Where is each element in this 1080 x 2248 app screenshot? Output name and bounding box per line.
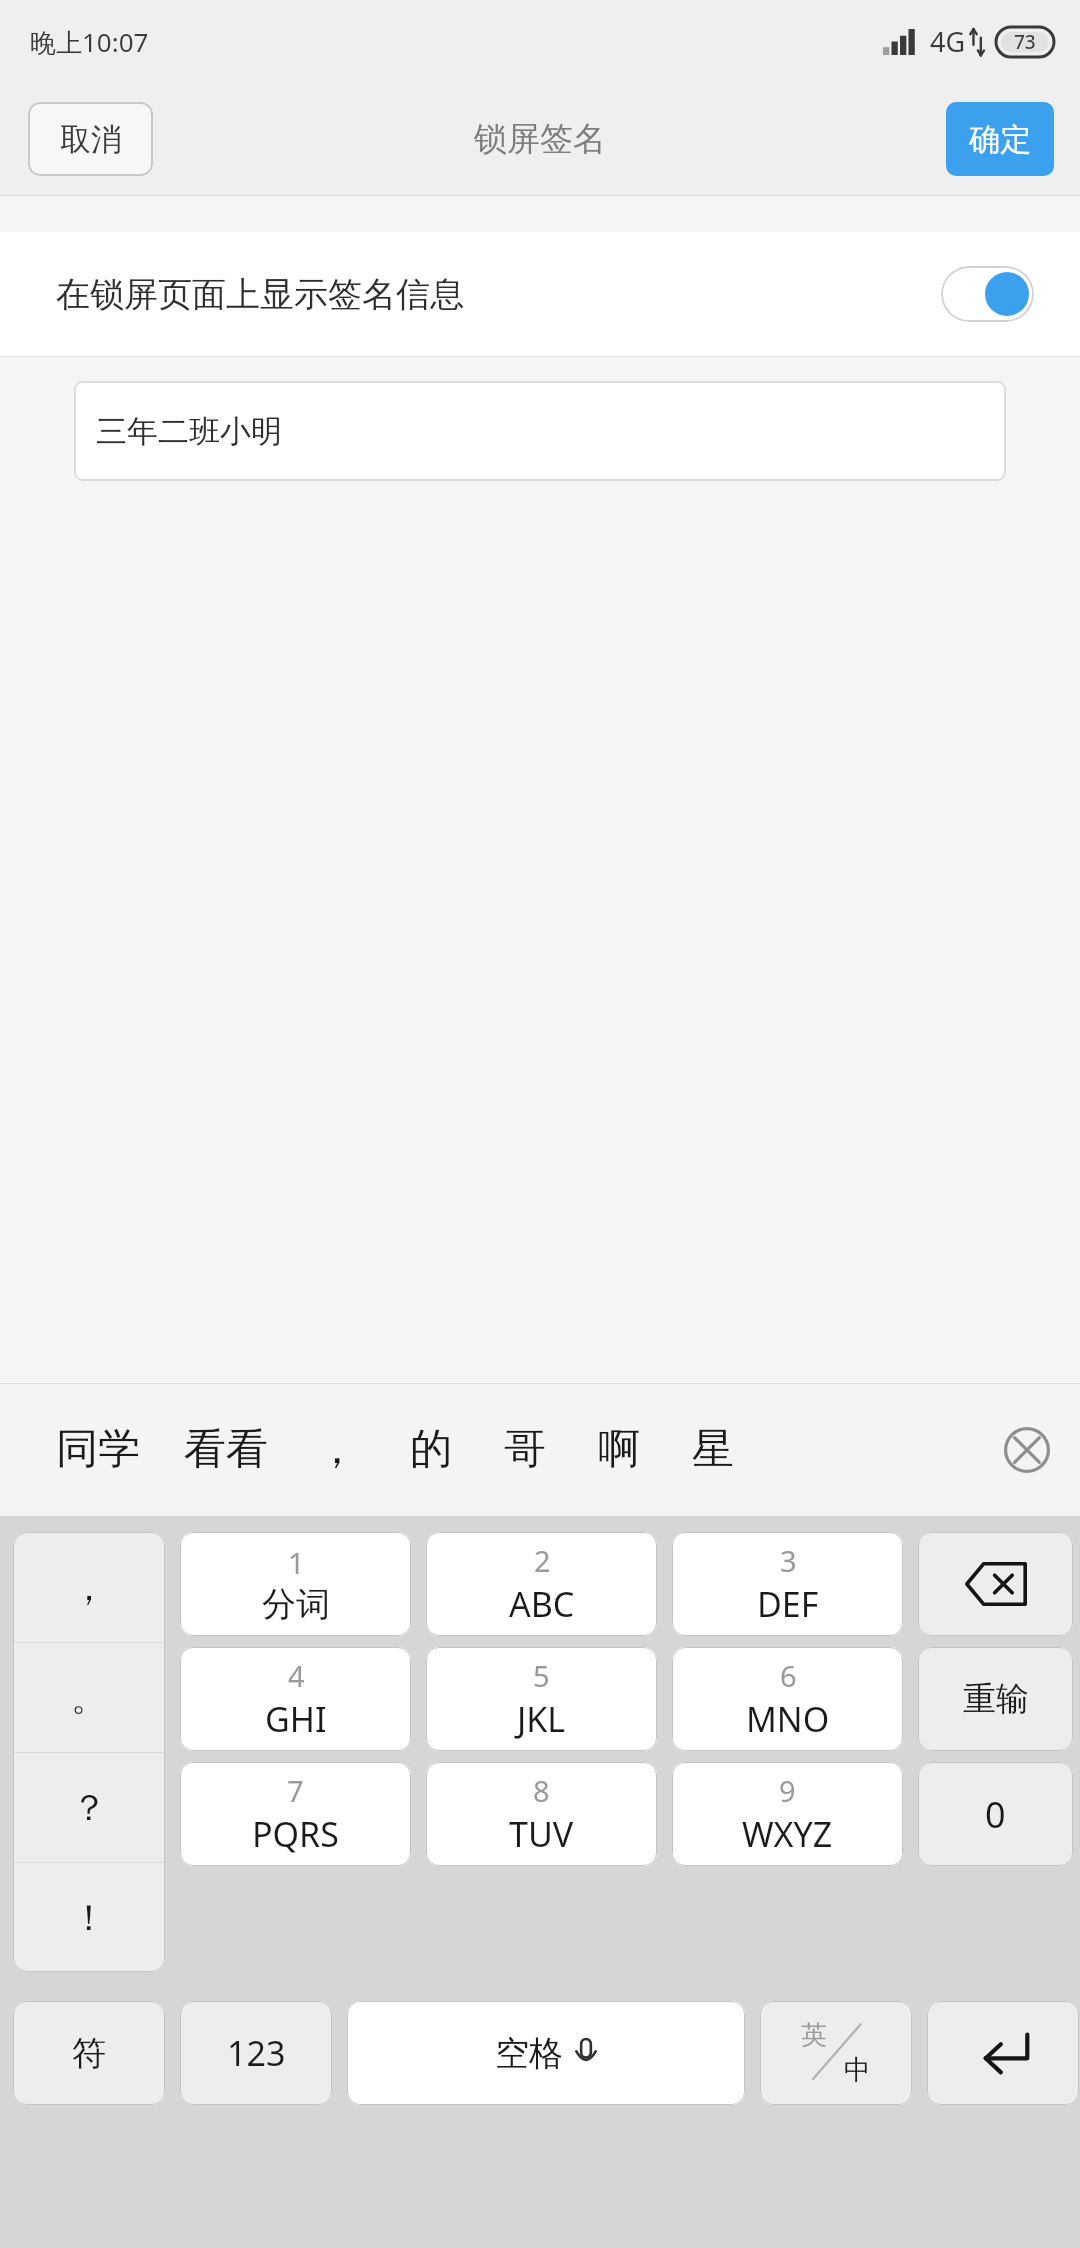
staticText: 晚上10:07 bbox=[30, 24, 149, 60]
staticText: 英 bbox=[801, 2019, 827, 2052]
button[interactable]: 哥 bbox=[504, 1423, 546, 1476]
staticText: 8 bbox=[533, 1771, 550, 1810]
staticText: 同学 bbox=[56, 1423, 140, 1476]
staticText: 3 bbox=[780, 1541, 797, 1580]
staticText: 哥 bbox=[504, 1423, 546, 1476]
button[interactable]: 8 bbox=[426, 1762, 657, 1866]
button[interactable]: 1 bbox=[180, 1532, 411, 1636]
staticText: 123 bbox=[227, 2030, 286, 2076]
button[interactable]: 0 bbox=[918, 1762, 1073, 1866]
staticText: 4G bbox=[930, 23, 966, 60]
button[interactable]: 重输 bbox=[918, 1647, 1073, 1751]
button[interactable]: 看看 bbox=[184, 1423, 268, 1476]
button[interactable]: ！ bbox=[13, 1863, 165, 1972]
staticText: 1 bbox=[288, 1543, 305, 1582]
staticText: 6 bbox=[780, 1656, 797, 1695]
staticText: PQRS bbox=[252, 1811, 339, 1857]
button[interactable]: 123 bbox=[180, 2001, 332, 2105]
staticText: 2 bbox=[534, 1541, 551, 1580]
button[interactable]: 同学 bbox=[56, 1423, 140, 1476]
button[interactable]: 4 bbox=[180, 1647, 411, 1751]
staticText: 4 bbox=[288, 1656, 305, 1695]
button[interactable]: 中英文切换 bbox=[760, 2001, 912, 2105]
button[interactable]: 在锁屏页面上显示签名信息 bbox=[0, 232, 1080, 356]
staticText: GHI bbox=[265, 1696, 327, 1742]
button[interactable]: 退格 bbox=[918, 1532, 1073, 1636]
button[interactable]: ， bbox=[316, 1423, 358, 1476]
button[interactable]: 关闭候选 bbox=[998, 1421, 1056, 1479]
staticText: 符 bbox=[72, 2032, 106, 2075]
staticText: WXYZ bbox=[742, 1811, 833, 1857]
staticText: ！ bbox=[71, 1895, 107, 1940]
staticText: JKL bbox=[517, 1696, 566, 1742]
button[interactable]: 的 bbox=[410, 1423, 452, 1476]
staticText: 啊 bbox=[598, 1423, 640, 1476]
button[interactable]: 星 bbox=[692, 1423, 734, 1476]
button[interactable]: 7 bbox=[180, 1762, 411, 1866]
staticText: 空格 bbox=[495, 2032, 563, 2075]
button[interactable]: 6 bbox=[672, 1647, 903, 1751]
staticText: 星 bbox=[692, 1423, 734, 1476]
button[interactable]: 确定 bbox=[946, 102, 1054, 176]
button[interactable]: 5 bbox=[426, 1647, 657, 1751]
staticText: 重输 bbox=[963, 1678, 1029, 1720]
staticText: DEF bbox=[757, 1581, 819, 1627]
staticText: 9 bbox=[779, 1771, 796, 1810]
staticText: ， bbox=[316, 1423, 358, 1476]
staticText: 。 bbox=[71, 1675, 107, 1720]
button[interactable]: ， bbox=[13, 1532, 165, 1642]
button[interactable]: 回车 bbox=[927, 2001, 1079, 2105]
button[interactable]: 9 bbox=[672, 1762, 903, 1866]
staticText: 73 bbox=[1014, 29, 1036, 55]
staticText: 取消 bbox=[60, 120, 122, 159]
staticText: 在锁屏页面上显示签名信息 bbox=[56, 273, 464, 316]
staticText: ， bbox=[71, 1565, 107, 1610]
button[interactable]: 符 bbox=[13, 2001, 165, 2105]
staticText: 分词 bbox=[262, 1583, 330, 1626]
staticText: ？ bbox=[71, 1785, 107, 1830]
button[interactable]: 三年二班小明 bbox=[74, 381, 1006, 481]
staticText: 确定 bbox=[969, 120, 1031, 159]
staticText: 看看 bbox=[184, 1423, 268, 1476]
button[interactable]: 2 bbox=[426, 1532, 657, 1636]
button[interactable]: 3 bbox=[672, 1532, 903, 1636]
staticText: ABC bbox=[509, 1581, 575, 1627]
button[interactable]: 显示签名信息开关 bbox=[941, 266, 1034, 322]
staticText: TUV bbox=[509, 1811, 574, 1857]
staticText: 0 bbox=[985, 1790, 1006, 1839]
button[interactable]: 。 bbox=[13, 1643, 165, 1752]
staticText: 7 bbox=[287, 1771, 304, 1810]
button[interactable]: 空格 bbox=[347, 2001, 745, 2105]
button[interactable]: 取消 bbox=[28, 102, 153, 176]
staticText: 5 bbox=[533, 1656, 550, 1695]
button[interactable]: ？ bbox=[13, 1753, 165, 1862]
staticText: 锁屏签名 bbox=[474, 118, 606, 160]
staticText: MNO bbox=[746, 1696, 830, 1742]
staticText: 中 bbox=[844, 2053, 871, 2087]
staticText: 三年二班小明 bbox=[96, 412, 282, 451]
staticText: 的 bbox=[410, 1423, 452, 1476]
button[interactable]: 啊 bbox=[598, 1423, 640, 1476]
